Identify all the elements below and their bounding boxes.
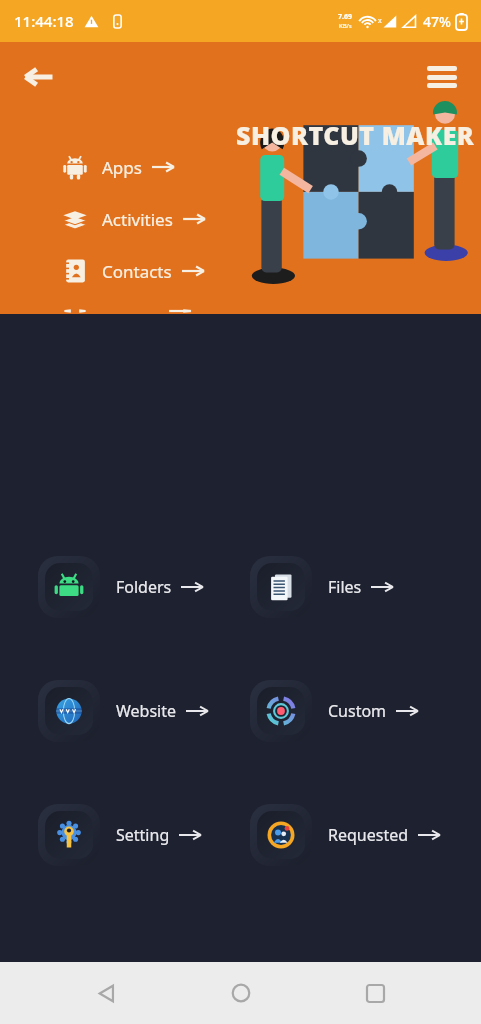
staticText: Setting: [116, 824, 170, 846]
button[interactable]: Back: [78, 965, 134, 1021]
staticText: 7.69: [338, 12, 352, 22]
button[interactable]: Menu: [419, 54, 465, 100]
staticText: KB/s: [339, 22, 352, 30]
button[interactable]: Back: [16, 54, 62, 100]
staticText: Custom: [328, 700, 387, 722]
button[interactable]: Contacts: [62, 256, 204, 286]
button[interactable]: Recents: [347, 965, 403, 1021]
staticText: Contacts: [102, 260, 172, 283]
button[interactable]: Custom: [250, 676, 418, 746]
staticText: Activities: [102, 208, 173, 231]
button[interactable]: Apps: [62, 152, 174, 182]
staticText: Apps: [102, 156, 142, 179]
staticText: Files: [328, 576, 362, 598]
button[interactable]: Folders: [38, 552, 203, 622]
staticText: SHORTCUT MAKER: [236, 118, 475, 152]
staticText: 11:44:18: [14, 11, 74, 31]
button[interactable]: Setting: [38, 800, 201, 870]
staticText: x: [378, 16, 382, 26]
staticText: 47%: [423, 12, 451, 31]
button[interactable]: Files: [250, 552, 393, 622]
staticText: Requested: [328, 824, 409, 846]
button[interactable]: Requested: [250, 800, 440, 870]
staticText: Folders: [116, 576, 172, 598]
button[interactable]: Home: [213, 965, 269, 1021]
button[interactable]: Intents: [62, 308, 191, 314]
button[interactable]: Activities: [62, 204, 205, 234]
button[interactable]: Website: [38, 676, 208, 746]
staticText: Website: [116, 700, 177, 722]
